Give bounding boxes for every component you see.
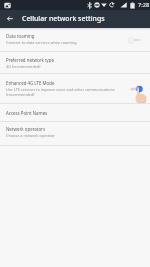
staticText: Use LTE services to improve voice and ot…: [6, 87, 126, 97]
button[interactable]: Switch off: [130, 34, 144, 46]
staticText: Enhanced 4G LTE Mode: [6, 80, 55, 86]
staticText: Preferred network type: [6, 57, 54, 63]
button[interactable]: Network operators: [0, 122, 150, 145]
staticText: Access Point Names: [6, 110, 48, 116]
staticText: Choose a network operator: [6, 133, 55, 138]
button[interactable]: Navigate up: [0, 10, 18, 28]
staticText: Connect to data services when roaming: [6, 40, 77, 45]
staticText: 7:28: [138, 1, 150, 9]
button[interactable]: Data roaming: [0, 28, 150, 51]
button[interactable]: Enhanced 4G LTE Mode: [0, 74, 150, 103]
staticText: Data roaming: [6, 33, 35, 39]
staticText: 4G (recommended): [6, 64, 41, 69]
button[interactable]: Switch on: [130, 83, 144, 95]
staticText: Network operators: [6, 126, 45, 132]
button[interactable]: Preferred network type: [0, 52, 150, 73]
button[interactable]: Access Point Names: [0, 104, 150, 121]
staticText: Cellular network settings: [22, 14, 105, 23]
